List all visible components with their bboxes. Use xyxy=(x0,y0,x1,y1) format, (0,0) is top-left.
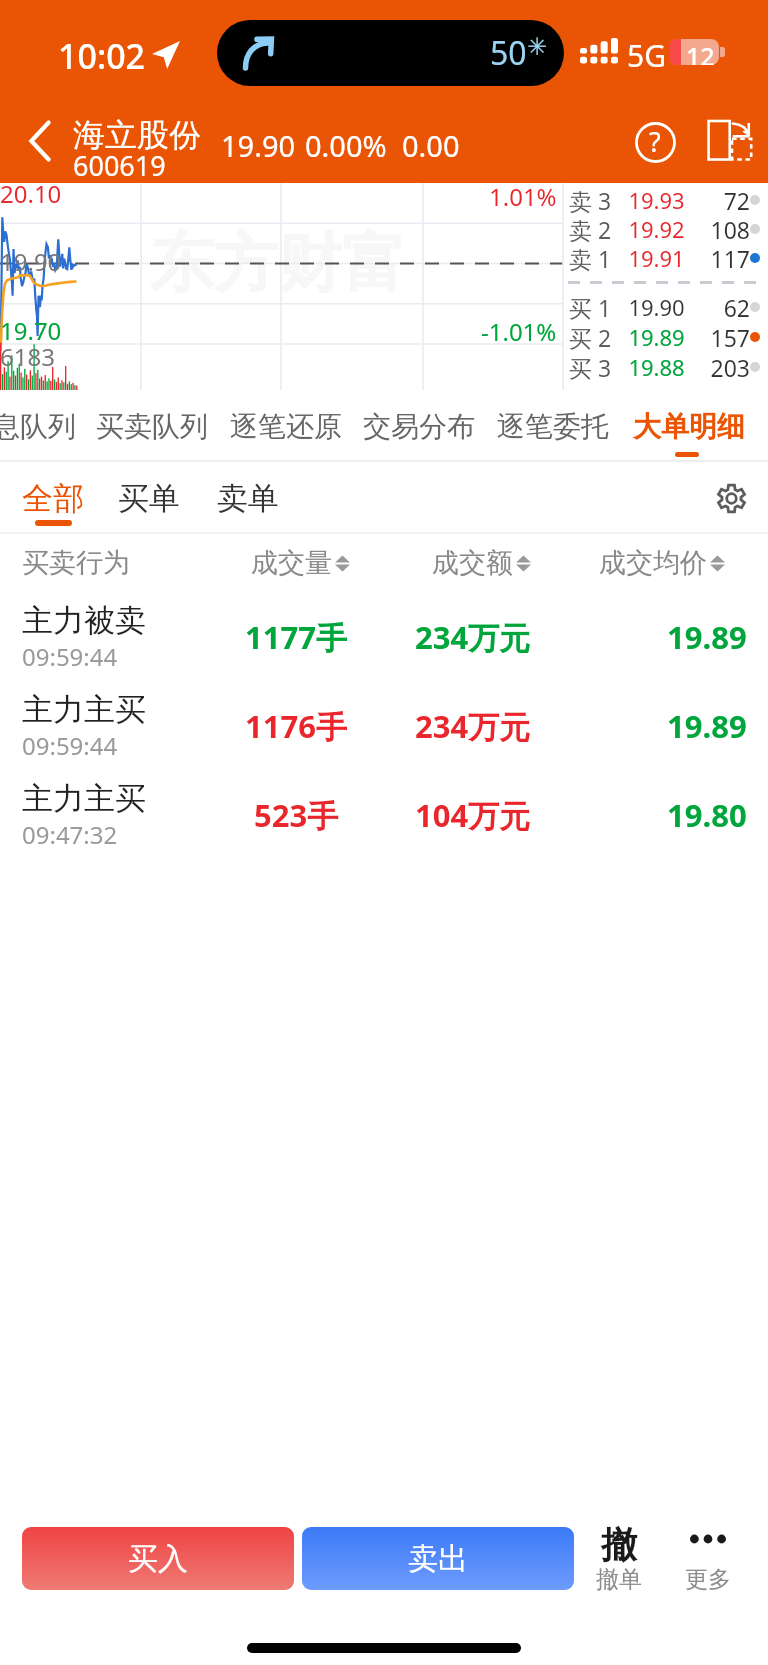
staticText: 主力主买 xyxy=(22,779,146,818)
staticText: 卖 3 xyxy=(569,185,612,214)
staticText: 19.91 xyxy=(628,243,685,273)
staticText: 19.89 xyxy=(628,322,685,352)
staticText: 234万元 xyxy=(415,705,531,747)
button[interactable]: 买卖队列 xyxy=(96,390,208,462)
button[interactable]: More options xyxy=(667,1515,749,1603)
staticText: 逐笔还原 xyxy=(230,409,342,444)
button[interactable]: Help xyxy=(614,101,696,183)
button[interactable]: 买 1 xyxy=(563,292,768,322)
staticText: 09:59:44 xyxy=(22,729,118,762)
staticText: 主力被卖 xyxy=(22,601,146,640)
button[interactable]: 大单明细 xyxy=(633,390,745,462)
staticText: -1.01% xyxy=(481,315,557,348)
button[interactable]: 主力主买 xyxy=(0,770,768,859)
staticText: 09:59:44 xyxy=(22,640,118,673)
staticText: 19.93 xyxy=(628,185,685,214)
staticText: 19.80 xyxy=(667,794,747,836)
staticText: 523手 xyxy=(254,794,339,836)
staticText: 卖 1 xyxy=(569,243,612,273)
button[interactable]: 成交额 xyxy=(432,534,533,592)
staticText: 买入 xyxy=(128,1540,188,1578)
staticText: 撤 xyxy=(601,1522,637,1567)
staticText: 买单 xyxy=(118,479,180,518)
staticText: 东方财富 xyxy=(150,223,406,304)
staticText: 海立股份 xyxy=(73,115,201,155)
staticText: 买 2 xyxy=(569,322,612,352)
button[interactable]: 逐笔还原 xyxy=(230,390,342,462)
staticText: 更多 xyxy=(685,1565,731,1594)
staticText: 117 xyxy=(710,243,750,273)
button[interactable]: 逐笔委托 xyxy=(497,390,609,462)
button[interactable]: 卖单 xyxy=(203,462,293,534)
staticText: 62 xyxy=(723,292,750,322)
staticText: 20.10 xyxy=(0,177,62,210)
button[interactable]: 卖 2 xyxy=(563,214,768,243)
staticText: 5G xyxy=(627,35,666,76)
button[interactable]: 主力主买 xyxy=(0,681,768,770)
staticText: 成交均价 xyxy=(599,546,707,580)
staticText: 成交额 xyxy=(432,546,513,580)
button[interactable]: 卖 1 xyxy=(563,243,768,273)
staticText: 10:02 xyxy=(58,33,146,79)
staticText: 157 xyxy=(710,322,750,352)
staticText: 买卖行为 xyxy=(22,546,130,580)
button[interactable]: 全部 xyxy=(8,462,98,534)
staticText: 买 1 xyxy=(569,292,612,322)
staticText: 50 xyxy=(490,31,527,75)
staticText: 19.89 xyxy=(667,616,747,658)
staticText: 19.92 xyxy=(628,214,685,243)
button[interactable]: 卖 3 xyxy=(563,185,768,214)
button[interactable]: Back xyxy=(6,99,74,183)
staticText: 买卖队列 xyxy=(96,409,208,444)
button[interactable]: 息队列 xyxy=(0,390,76,462)
staticText: 卖单 xyxy=(217,479,279,518)
staticText: 全部 xyxy=(22,479,84,518)
staticText: ? xyxy=(649,123,661,160)
staticText: 0.00 xyxy=(402,126,460,165)
staticText: 卖 2 xyxy=(569,214,612,243)
staticText: 撤单 xyxy=(596,1565,642,1594)
button[interactable]: 成交均价 xyxy=(599,534,727,592)
staticText: 1176手 xyxy=(245,705,347,747)
staticText: 108 xyxy=(710,214,750,243)
staticText: 0.00% xyxy=(305,126,387,165)
staticText: 234万元 xyxy=(415,616,531,658)
staticText: 主力主买 xyxy=(22,690,146,729)
staticText: 104万元 xyxy=(415,794,531,836)
staticText: 1.01% xyxy=(489,180,557,213)
staticText: 交易分布 xyxy=(363,409,475,444)
staticText: 成交量 xyxy=(251,546,332,580)
button[interactable]: 成交量 xyxy=(251,534,352,592)
staticText: 19.90 xyxy=(221,126,296,165)
staticText: 卖出 xyxy=(408,1540,468,1578)
staticText: 19.90 xyxy=(628,292,685,322)
staticText: 息队列 xyxy=(0,409,76,444)
staticText: 19.88 xyxy=(628,352,685,382)
button[interactable]: 撤 xyxy=(578,1515,660,1603)
button[interactable]: 卖出 xyxy=(302,1527,574,1590)
button[interactable]: 买单 xyxy=(104,462,194,534)
button[interactable]: 买 3 xyxy=(563,352,768,382)
staticText: 19.70 xyxy=(0,314,62,347)
button[interactable]: Settings xyxy=(699,466,763,530)
staticText: 72 xyxy=(723,185,750,214)
staticText: 19.90 xyxy=(0,245,62,278)
staticText: 12 xyxy=(686,39,715,65)
staticText: 买 3 xyxy=(569,352,612,382)
staticText: ✳ xyxy=(527,33,548,61)
button[interactable]: Switch layout xyxy=(700,115,762,167)
staticText: 600619 xyxy=(73,147,166,184)
staticText: 203 xyxy=(710,352,750,382)
staticText: 6183 xyxy=(0,340,55,373)
staticText: 逐笔委托 xyxy=(497,409,609,444)
button[interactable]: 买 2 xyxy=(563,322,768,352)
button[interactable]: 主力被卖 xyxy=(0,592,768,681)
staticText: 19.89 xyxy=(667,705,747,747)
staticText: 大单明细 xyxy=(633,409,745,444)
button[interactable]: 买入 xyxy=(22,1527,294,1590)
button[interactable]: 交易分布 xyxy=(363,390,475,462)
staticText: 09:47:32 xyxy=(22,818,118,851)
staticText: 1177手 xyxy=(245,616,347,658)
